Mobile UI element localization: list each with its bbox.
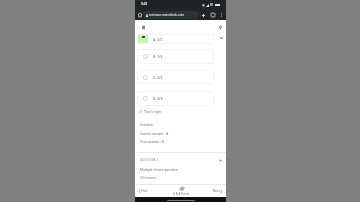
staticText: A. 3/2 [153,37,163,42]
staticText: That's right [144,109,162,113]
staticText: B. 1/4 [153,54,163,59]
button[interactable]: Collapse [219,35,224,40]
button[interactable]: Home [136,11,143,18]
button[interactable]: A. 3/2 [137,34,214,44]
staticText: Multiple choice question [140,167,178,171]
button[interactable]: Expand question [217,157,223,163]
staticText: Q & A Forum [173,192,190,196]
button[interactable]: More options [218,12,224,18]
button[interactable]: New tab [200,12,206,18]
staticText: Prev [141,189,148,193]
button[interactable]: Tabs [210,12,216,18]
staticText: Your answer : A [140,139,164,143]
button[interactable]: Q & A Forum [173,187,190,196]
button[interactable]: Next [213,189,222,193]
staticText: D. 3/6 [153,96,163,101]
staticText: 9:41 [141,2,148,6]
button[interactable]: C. 2/5 [137,70,214,84]
button[interactable]: B. 1/4 [137,49,214,64]
button[interactable]: Prev [139,189,148,193]
staticText: 3/3 correct [140,176,156,180]
staticText: Correct answer : A [140,131,169,135]
staticText: testmoz.mamdsub.com [149,13,185,17]
staticText: Solution [140,122,153,126]
button[interactable]: D. 3/6 [137,91,214,106]
staticText: Next [213,189,220,193]
staticText: QUESTION 4 [140,158,159,162]
button[interactable]: Menu [140,24,146,30]
button[interactable]: Hint [217,24,223,30]
staticText: C. 2/5 [153,75,163,80]
button[interactable]: testmoz.mamdsub.com [143,11,199,19]
staticText: 81 [210,3,214,7]
